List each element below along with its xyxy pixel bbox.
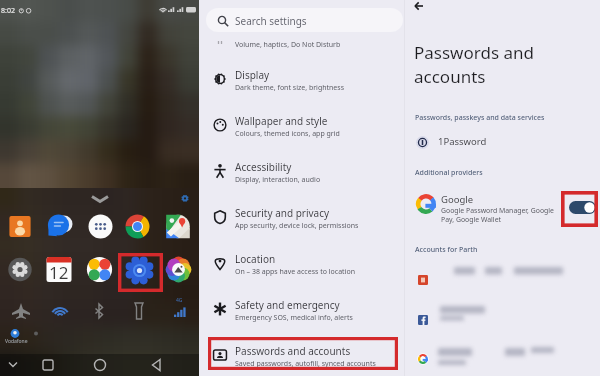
staticText: Additional providers [415, 168, 483, 178]
button[interactable] [418, 354, 428, 364]
button[interactable]: Accessibility [199, 159, 404, 203]
staticText: Emergency SOS, medical info, alerts [235, 313, 353, 323]
staticText: Accessibility [235, 160, 292, 174]
button[interactable]: Display [199, 67, 404, 111]
staticText: Vodafone [5, 338, 28, 345]
staticText: 12 [49, 261, 69, 284]
staticText: Google [441, 193, 474, 206]
button[interactable]: Google [404, 190, 600, 226]
staticText: Accounts for Parth [415, 245, 478, 255]
button[interactable]: Search settings [206, 8, 403, 32]
button[interactable] [418, 315, 428, 325]
button[interactable] [418, 275, 428, 285]
button[interactable]: Back [410, 0, 428, 14]
staticText: Saved passwords, autofill, synced accoun… [235, 359, 376, 369]
staticText: Location [235, 252, 276, 266]
staticText: Passwords and accounts [235, 344, 351, 358]
staticText: On – 38 apps have access to location [235, 267, 355, 277]
button[interactable]: Wallpaper and style [199, 113, 404, 157]
staticText: Passwords, passkeys and data services [415, 113, 545, 123]
button[interactable]: Enable Google autofill [569, 201, 596, 214]
staticText: Safety and emergency [235, 298, 340, 312]
button[interactable]: Security and privacy [199, 205, 404, 249]
button[interactable]: Settings app [118, 253, 163, 292]
staticText: Display [235, 68, 270, 82]
staticText: Google Password Manager, Google Pay, Goo… [441, 206, 555, 224]
button[interactable]: 1Password [404, 130, 600, 155]
staticText: App security, device lock, permissions [235, 221, 359, 231]
staticText: Display, interaction, audio [235, 175, 321, 185]
button[interactable]: Safety and emergency [199, 297, 404, 341]
staticText: Passwords and accounts [414, 41, 534, 88]
staticText: Volume, haptics, Do Not Disturb [235, 40, 341, 50]
staticText: Search settings [235, 14, 307, 28]
staticText: Dark theme, font size, brightness [235, 83, 345, 93]
staticText: 1Password [438, 135, 487, 148]
staticText: 8:02 [1, 6, 15, 16]
staticText: Security and privacy [235, 206, 330, 220]
staticText: Colours, themed icons, app grid [235, 129, 340, 139]
staticText: 4G [176, 297, 183, 304]
staticText: Wallpaper and style [235, 114, 328, 128]
button[interactable]: Passwords and accounts [199, 343, 404, 376]
button[interactable]: Location [199, 251, 404, 295]
